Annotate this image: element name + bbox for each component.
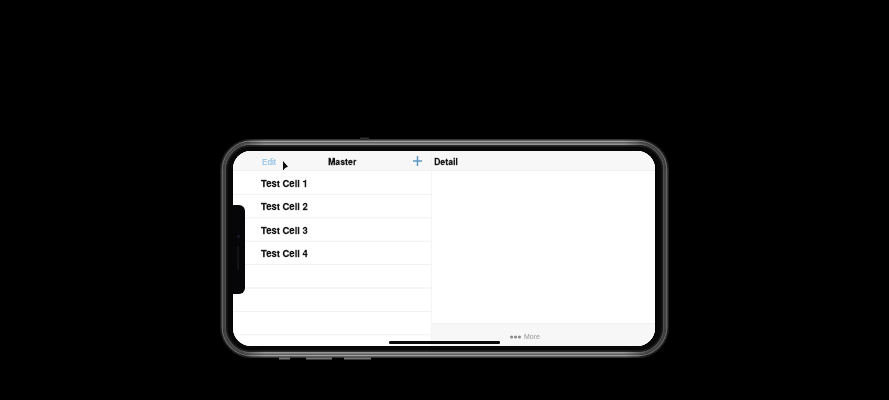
button[interactable]: [233, 311, 431, 334]
staticText: Test Cell 2: [261, 199, 308, 213]
button[interactable]: Test Cell 3: [233, 218, 431, 241]
button[interactable]: [233, 288, 431, 311]
button[interactable]: Test Cell 4: [233, 241, 431, 264]
staticText: Edit: [262, 158, 277, 167]
staticText: Test Cell 4: [261, 246, 308, 260]
staticText: Master: [328, 155, 357, 168]
staticText: Detail: [434, 155, 458, 168]
button[interactable]: [233, 335, 431, 346]
button[interactable]: Add: [409, 153, 425, 169]
button[interactable]: Test Cell 1: [233, 171, 431, 194]
button[interactable]: Edit: [262, 158, 277, 167]
button[interactable]: [233, 265, 431, 288]
staticText: Test Cell 1: [261, 176, 308, 190]
button[interactable]: More: [510, 333, 540, 341]
staticText: More: [524, 333, 540, 341]
staticText: Test Cell 3: [261, 223, 308, 237]
button[interactable]: Test Cell 2: [233, 194, 431, 217]
